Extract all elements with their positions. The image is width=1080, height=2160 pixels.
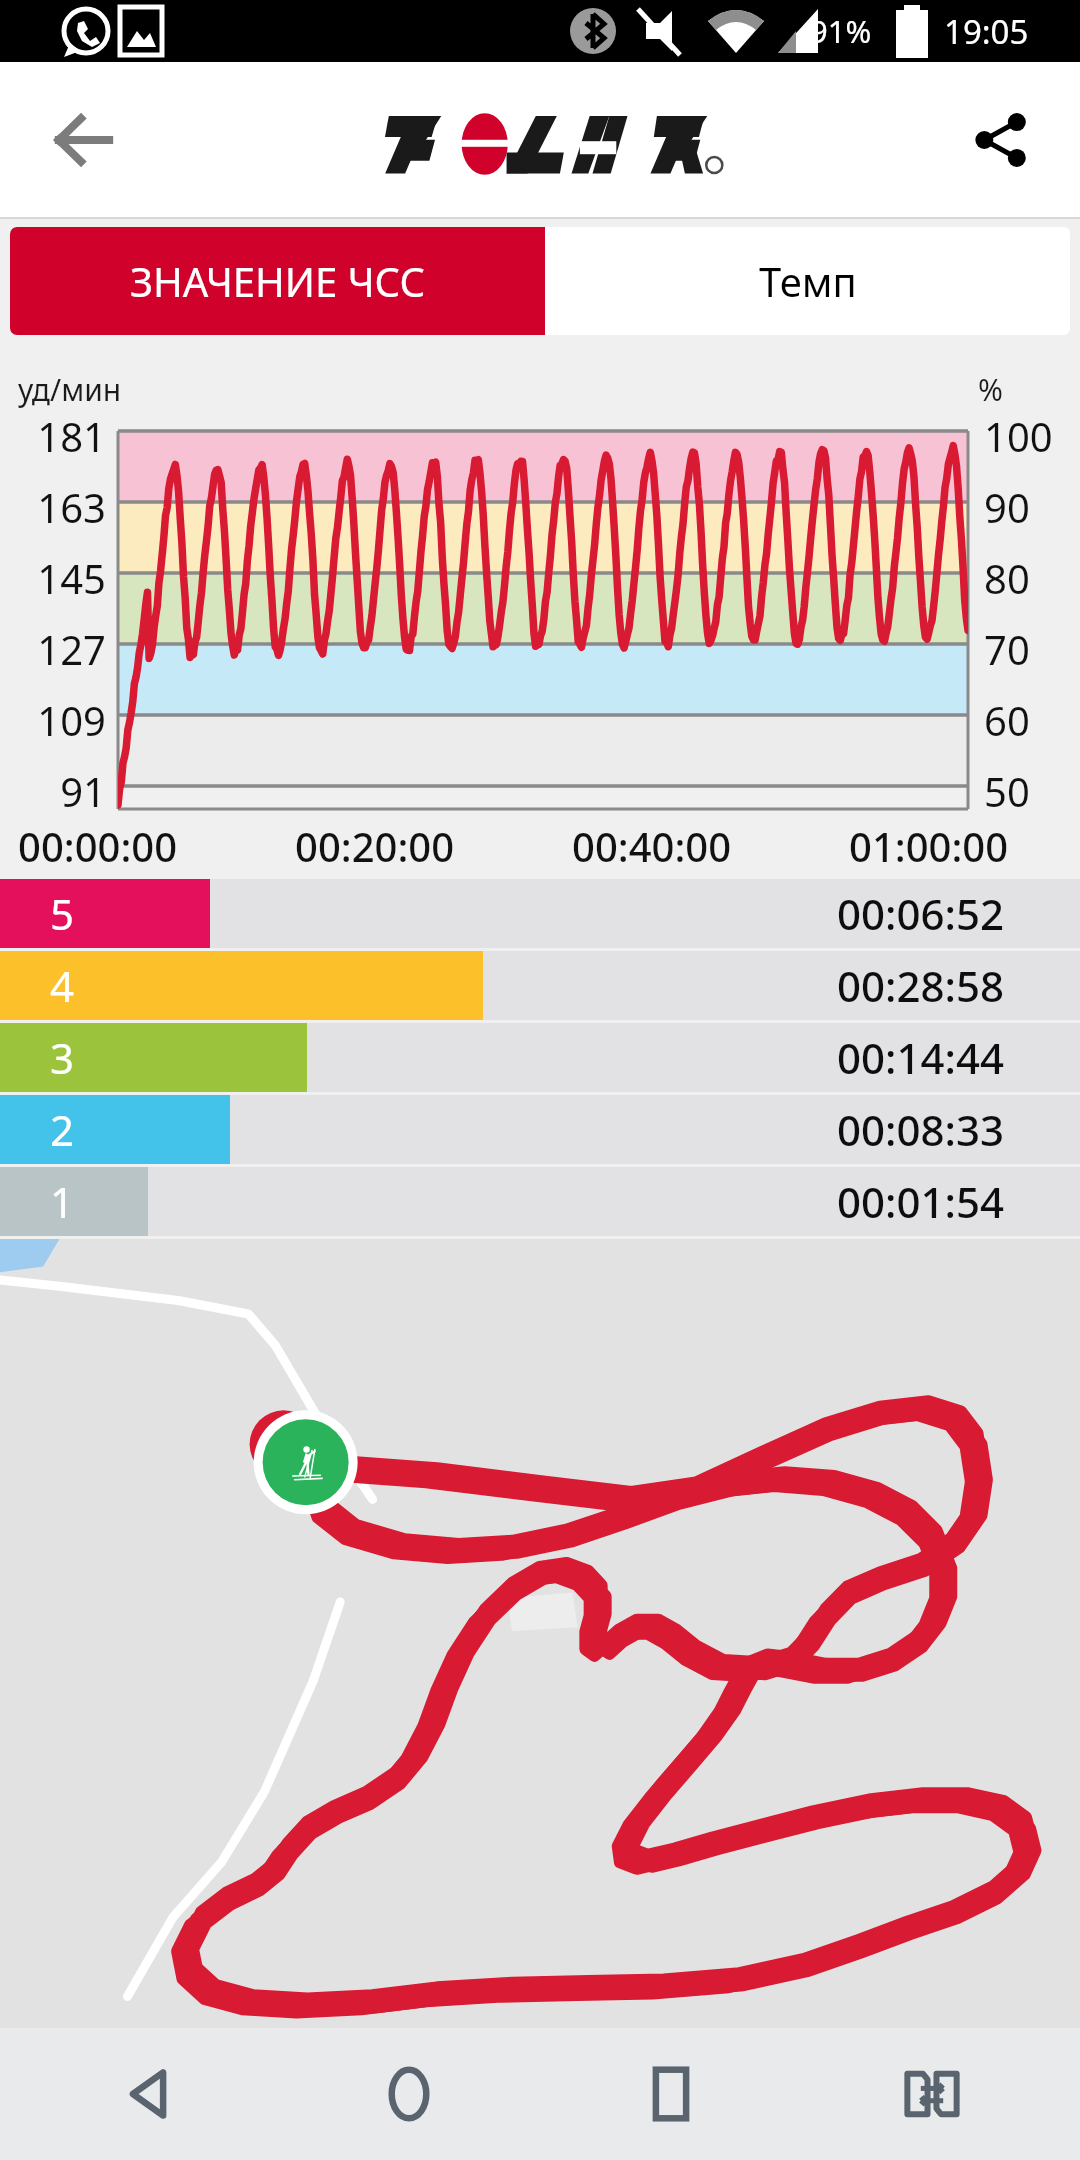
button[interactable]: Share <box>954 94 1046 186</box>
staticText: 163 <box>14 480 106 534</box>
staticText: 00:40:00 <box>572 819 732 873</box>
button[interactable]: Recent apps <box>619 2042 723 2146</box>
button[interactable]: 3 <box>0 1023 1080 1092</box>
staticText: 00:20:00 <box>295 819 455 873</box>
staticText: 5 <box>50 885 75 942</box>
button[interactable]: Back <box>38 94 130 186</box>
staticText: 00:00:00 <box>18 819 178 873</box>
staticText: 19:05 <box>944 9 1029 54</box>
staticText: 3 <box>50 1029 75 1086</box>
staticText: 50 <box>984 764 1030 818</box>
staticText: 00:06:52 <box>837 885 1004 942</box>
button[interactable]: 5 <box>0 879 1080 948</box>
staticText: 00:01:54 <box>837 1173 1004 1230</box>
staticText: 70 <box>984 622 1030 676</box>
staticText: 145 <box>14 551 106 605</box>
staticText: 00:28:58 <box>837 957 1004 1014</box>
staticText: 00:14:44 <box>837 1029 1004 1086</box>
staticText: Темп <box>759 254 857 308</box>
staticText: ЗНАЧЕНИЕ ЧСС <box>130 254 425 308</box>
staticText: 2 <box>50 1101 75 1158</box>
staticText: 60 <box>984 693 1030 747</box>
staticText: 91% <box>810 10 872 52</box>
staticText: 00:08:33 <box>837 1101 1004 1158</box>
staticText: 4 <box>50 957 75 1014</box>
staticText: 80 <box>984 551 1030 605</box>
button[interactable]: Switch apps <box>880 2042 984 2146</box>
staticText: 181 <box>14 409 106 463</box>
staticText: 91 <box>14 764 106 818</box>
button[interactable] <box>0 1239 1080 2028</box>
button[interactable]: 4 <box>0 951 1080 1020</box>
button[interactable]: 1 <box>0 1167 1080 1236</box>
staticText: 100 <box>984 409 1053 463</box>
staticText: 1 <box>50 1173 75 1230</box>
staticText: 01:00:00 <box>849 819 1009 873</box>
staticText: % <box>978 369 1003 410</box>
staticText: 90 <box>984 480 1030 534</box>
staticText: 109 <box>14 693 106 747</box>
button[interactable]: Back <box>96 2042 200 2146</box>
button[interactable]: Темп <box>545 227 1070 335</box>
staticText: уд/мин <box>18 369 122 410</box>
staticText: 127 <box>14 622 106 676</box>
button[interactable]: 2 <box>0 1095 1080 1164</box>
button[interactable]: ЗНАЧЕНИЕ ЧСС <box>10 227 545 335</box>
button[interactable]: Home <box>357 2042 461 2146</box>
